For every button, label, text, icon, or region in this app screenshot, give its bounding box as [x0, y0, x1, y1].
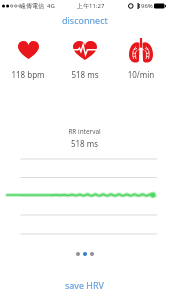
staticText: 118 bpm — [0, 69, 56, 80]
staticText: RR interval — [0, 127, 169, 136]
staticText: 518 ms — [57, 69, 113, 80]
staticText: 4G — [47, 2, 55, 10]
button[interactable]: 118 bpm — [0, 38, 56, 78]
staticText: 遠傳電信 — [20, 2, 44, 10]
button[interactable]: 518 ms — [57, 38, 113, 78]
button[interactable]: 10/min — [113, 38, 169, 78]
staticText: save HRV — [65, 279, 105, 291]
staticText: 518 ms — [0, 138, 169, 149]
staticText: 10/min — [113, 69, 169, 80]
button[interactable]: disconnect — [55, 14, 114, 26]
staticText: 96% — [141, 2, 153, 10]
staticText: disconnect — [62, 14, 108, 26]
button[interactable]: save HRV — [55, 279, 114, 291]
staticText: 上午11:27 — [77, 2, 105, 10]
